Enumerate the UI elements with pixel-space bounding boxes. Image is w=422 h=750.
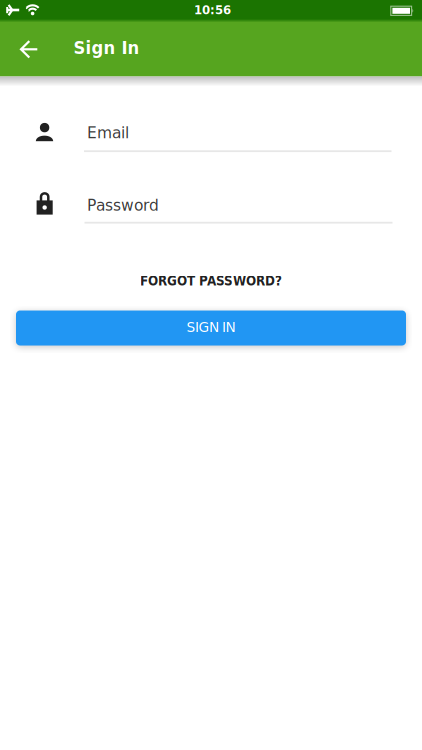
button[interactable]: Email — [22, 122, 422, 154]
button[interactable]: SIGN IN — [16, 310, 406, 345]
button[interactable]: FORGOT PASSWORD? — [0, 271, 422, 291]
staticText: Sign In — [73, 37, 139, 58]
staticText: Password — [87, 196, 159, 214]
button[interactable]: Back — [0, 20, 56, 76]
staticText: 10:56 — [194, 3, 231, 17]
staticText: Email — [87, 124, 129, 142]
button[interactable]: Password — [22, 192, 422, 226]
staticText: FORGOT PASSWORD? — [140, 273, 282, 289]
staticText: SIGN IN — [186, 319, 235, 335]
